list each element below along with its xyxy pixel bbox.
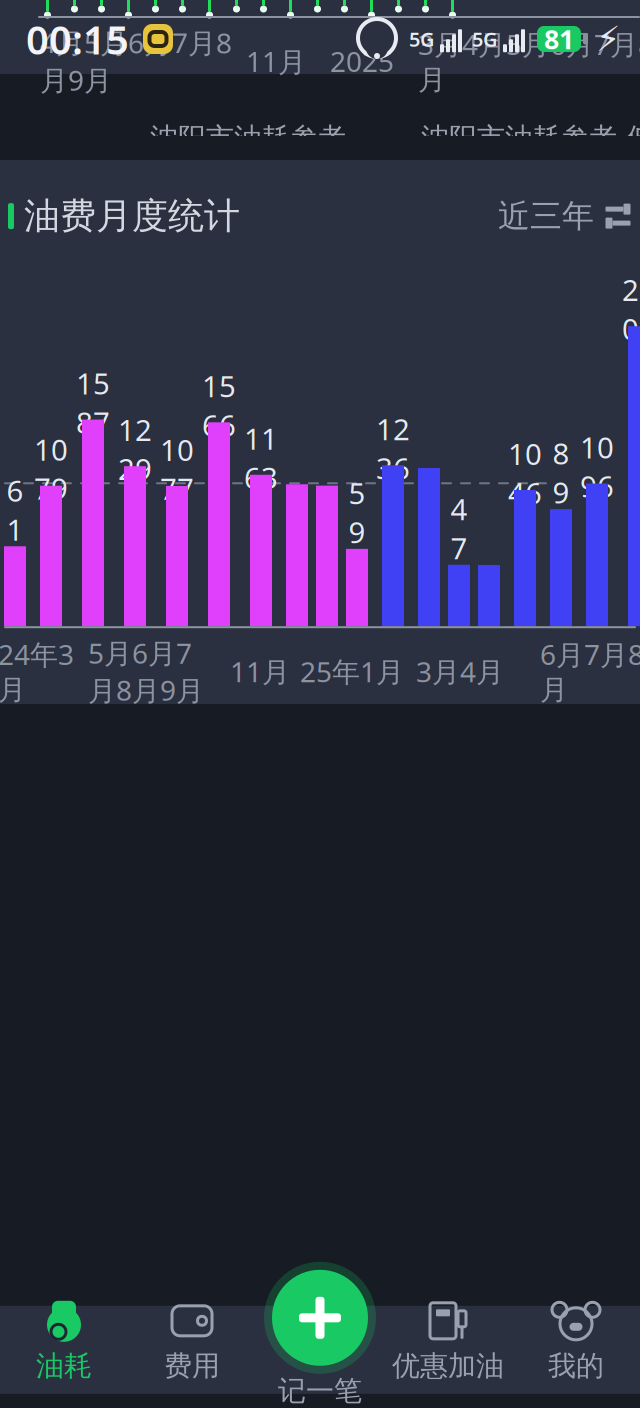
staticText: 25年1月	[300, 653, 404, 690]
staticText: 594	[348, 473, 365, 590]
staticText: 1229	[118, 410, 152, 488]
staticText: 3月4月	[416, 653, 504, 690]
staticText: 1077	[160, 430, 194, 508]
staticText: 6月	[294, 1230, 338, 1267]
staticText: 2025	[330, 43, 394, 80]
button[interactable]: 我的	[512, 1291, 640, 1397]
staticText: 614	[6, 471, 23, 588]
staticText: 1046	[508, 434, 542, 512]
button[interactable]: 近三年	[498, 196, 632, 236]
staticText: 5G	[472, 26, 498, 52]
staticText: 1587	[76, 364, 110, 441]
staticText: 沈阳市油耗参考-低位	[421, 118, 640, 190]
staticText: 费用	[164, 1349, 220, 1383]
staticText: 油耗	[28, 137, 84, 171]
staticText: 5G	[409, 26, 435, 52]
staticText: ⚡︎	[596, 19, 620, 59]
staticText: 3月4月5月6月7月8月	[418, 25, 640, 97]
staticText: 近三年	[498, 196, 594, 236]
staticText: 2025年	[359, 1285, 451, 1322]
staticText: 00:15	[26, 12, 129, 65]
staticText: 6月7月8月	[540, 636, 640, 707]
staticText: 81	[544, 21, 574, 57]
staticText: 11月	[246, 43, 306, 80]
staticText: 油耗	[36, 1349, 92, 1383]
staticText: 1236	[376, 409, 410, 487]
staticText: 1096	[580, 428, 614, 505]
staticText: 5月6月7月8月9月	[88, 634, 204, 709]
staticText: 沈阳市油耗参考-高位	[150, 118, 355, 190]
staticText: 4月5月6月7月8月9月	[40, 24, 232, 98]
button[interactable]: 油耗	[0, 1291, 128, 1397]
button[interactable]: 费用	[128, 1291, 256, 1397]
staticText: 2304	[622, 270, 640, 348]
staticText: 1566	[202, 366, 236, 444]
staticText: 1079	[34, 430, 68, 508]
staticText: 24年3月	[0, 636, 74, 707]
staticText: 899	[552, 434, 569, 551]
staticText: 优惠加油	[392, 1349, 504, 1383]
staticText: 我的	[548, 1349, 604, 1383]
staticText: 472	[450, 489, 467, 606]
staticText: 2024年	[213, 1285, 305, 1322]
staticText: 记一笔	[278, 1374, 362, 1408]
button[interactable]: 记一笔	[256, 1266, 384, 1408]
staticText: 油费月度统计	[24, 194, 240, 238]
button[interactable]: 优惠加油	[384, 1291, 512, 1397]
staticText: 11月	[230, 653, 290, 690]
staticText: 1163	[244, 419, 278, 497]
